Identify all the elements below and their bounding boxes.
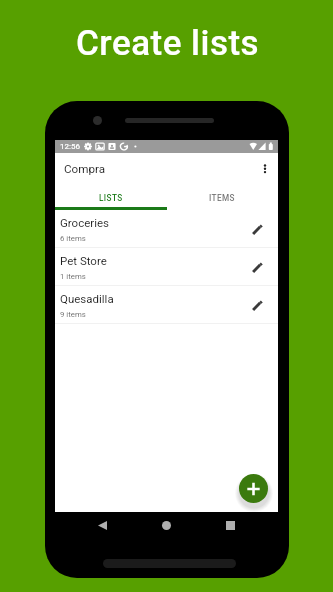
- staticText: 6 items: [60, 234, 86, 243]
- button[interactable]: Add list: [239, 474, 268, 503]
- button[interactable]: ITEMS: [166, 185, 278, 210]
- button[interactable]: Pet Store: [55, 248, 278, 286]
- staticText: LISTS: [99, 193, 123, 203]
- staticText: ITEMS: [209, 193, 235, 203]
- button[interactable]: LISTS: [55, 185, 166, 210]
- staticText: 1 items: [60, 272, 86, 281]
- button[interactable]: Groceries: [55, 210, 278, 248]
- button[interactable]: Recents: [219, 514, 241, 536]
- button[interactable]: Edit Pet Store: [242, 252, 272, 282]
- button[interactable]: Quesadilla: [55, 286, 278, 324]
- staticText: Create lists: [76, 23, 260, 64]
- button[interactable]: More options: [252, 153, 278, 185]
- staticText: 9 items: [60, 310, 86, 319]
- button[interactable]: Edit Quesadilla: [242, 290, 272, 320]
- staticText: 12:56: [60, 142, 80, 151]
- staticText: Quesadilla: [60, 292, 114, 305]
- button[interactable]: Back: [91, 514, 113, 536]
- staticText: Compra: [64, 162, 106, 176]
- staticText: Pet Store: [60, 254, 107, 267]
- button[interactable]: Home: [155, 514, 177, 536]
- button[interactable]: Edit Groceries: [242, 214, 272, 244]
- staticText: Groceries: [60, 216, 110, 229]
